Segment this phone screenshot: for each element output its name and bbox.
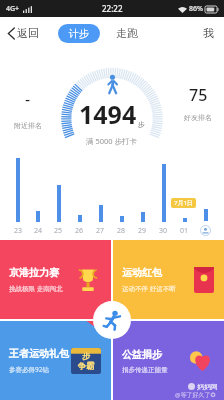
staticText: 王者运动礼包 [9, 347, 69, 360]
staticText: - [25, 88, 31, 110]
staticText: 4G+ [6, 4, 20, 14]
button[interactable]: 01 [174, 158, 195, 236]
staticText: 26 [75, 226, 84, 236]
button[interactable]: - [14, 88, 42, 130]
button[interactable]: 30 [153, 158, 174, 236]
staticText: 运动红包 [122, 266, 162, 279]
button[interactable]: 24 [28, 158, 48, 236]
staticText: 满 5000 步打卡 [86, 136, 138, 146]
button[interactable]: 开始跑步 [93, 301, 131, 339]
button[interactable]: 75 [184, 84, 212, 122]
staticText: 86% [189, 4, 203, 14]
staticText: 28 [117, 226, 126, 236]
staticText: 返回 [17, 26, 39, 40]
staticText: @等了好久了✪ [175, 391, 216, 399]
staticText: 附近排名 [14, 121, 42, 130]
staticText: 我 [203, 26, 214, 40]
staticText: 75 [189, 84, 208, 106]
staticText: 京港拉力赛 [9, 266, 59, 279]
button[interactable] [195, 158, 216, 236]
button[interactable]: 26 [69, 158, 90, 236]
staticText: 29 [138, 226, 147, 236]
staticText: 走跑 [116, 26, 138, 40]
staticText: 30 [159, 226, 168, 236]
button[interactable]: 运动红包 [113, 240, 224, 319]
staticText: 23 [14, 226, 23, 236]
staticText: 01 [180, 226, 189, 236]
button[interactable]: 23 [8, 158, 28, 236]
staticText: 计步 [69, 27, 89, 40]
staticText: 步 [138, 120, 145, 129]
button[interactable]: 28 [111, 158, 132, 236]
staticText: 参赛必得92钻 [9, 365, 49, 374]
button[interactable]: 27 [90, 158, 111, 236]
button[interactable]: 7月1日 [171, 198, 196, 208]
staticText: 好友排名 [184, 113, 212, 122]
button[interactable]: 走跑 [112, 23, 142, 43]
button[interactable]: 公益捐步 [113, 321, 224, 400]
staticText: 27 [96, 226, 105, 236]
staticText: 公益捐步 [122, 348, 162, 361]
staticText: 25 [54, 226, 63, 236]
staticText: 妈妈网 [197, 382, 218, 391]
staticText: 22:22 [102, 3, 123, 14]
staticText: 运动不停 好运不断 [122, 284, 176, 293]
button[interactable]: 我 [193, 22, 224, 44]
staticText: 1494 [79, 97, 137, 131]
button[interactable]: 返回 [0, 22, 47, 44]
button[interactable]: 29 [132, 158, 153, 236]
button[interactable]: 计步 [58, 24, 100, 43]
button[interactable]: 京港拉力赛 [0, 240, 111, 319]
staticText: 热门 [94, 323, 106, 335]
button[interactable]: 25 [48, 158, 69, 236]
staticText: 挑战极限 走南闯北 [9, 284, 63, 293]
staticText: 捐步传递正能量 [122, 366, 168, 374]
button[interactable]: 王者运动礼包 [0, 321, 111, 400]
staticText: 步 争霸 [78, 351, 94, 371]
staticText: 24 [34, 226, 43, 236]
staticText: 7月1日 [174, 199, 193, 207]
